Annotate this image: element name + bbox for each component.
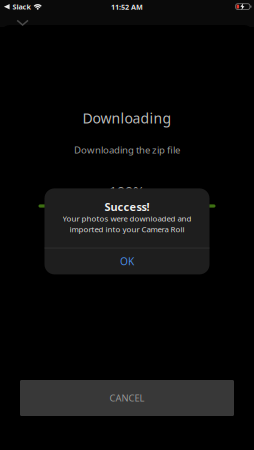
staticText: 11:52 AM <box>111 2 143 12</box>
staticText: CANCEL <box>109 392 144 404</box>
button[interactable]: Back to Slack <box>0 0 34 14</box>
button[interactable]: OK <box>44 248 209 274</box>
staticText: Success! <box>104 199 149 214</box>
staticText: 100% <box>109 182 145 201</box>
staticText: Downloading <box>82 108 171 128</box>
staticText: Downloading the zip file <box>74 143 180 156</box>
staticText: imported into your Camera Roll <box>69 224 184 234</box>
staticText: Your photos were downloaded and <box>62 213 191 224</box>
staticText: Slack <box>13 2 31 12</box>
button[interactable]: CANCEL <box>20 380 234 416</box>
staticText: OK <box>120 254 134 268</box>
